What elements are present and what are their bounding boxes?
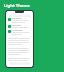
button[interactable] — [6, 37, 33, 46]
button[interactable] — [6, 47, 33, 56]
button[interactable] — [6, 57, 33, 62]
button[interactable] — [6, 29, 33, 36]
button[interactable] — [6, 24, 33, 29]
button[interactable]: Search — [6, 14, 33, 17]
staticText: Light Theme — [4, 3, 31, 9]
button[interactable] — [6, 17, 33, 24]
